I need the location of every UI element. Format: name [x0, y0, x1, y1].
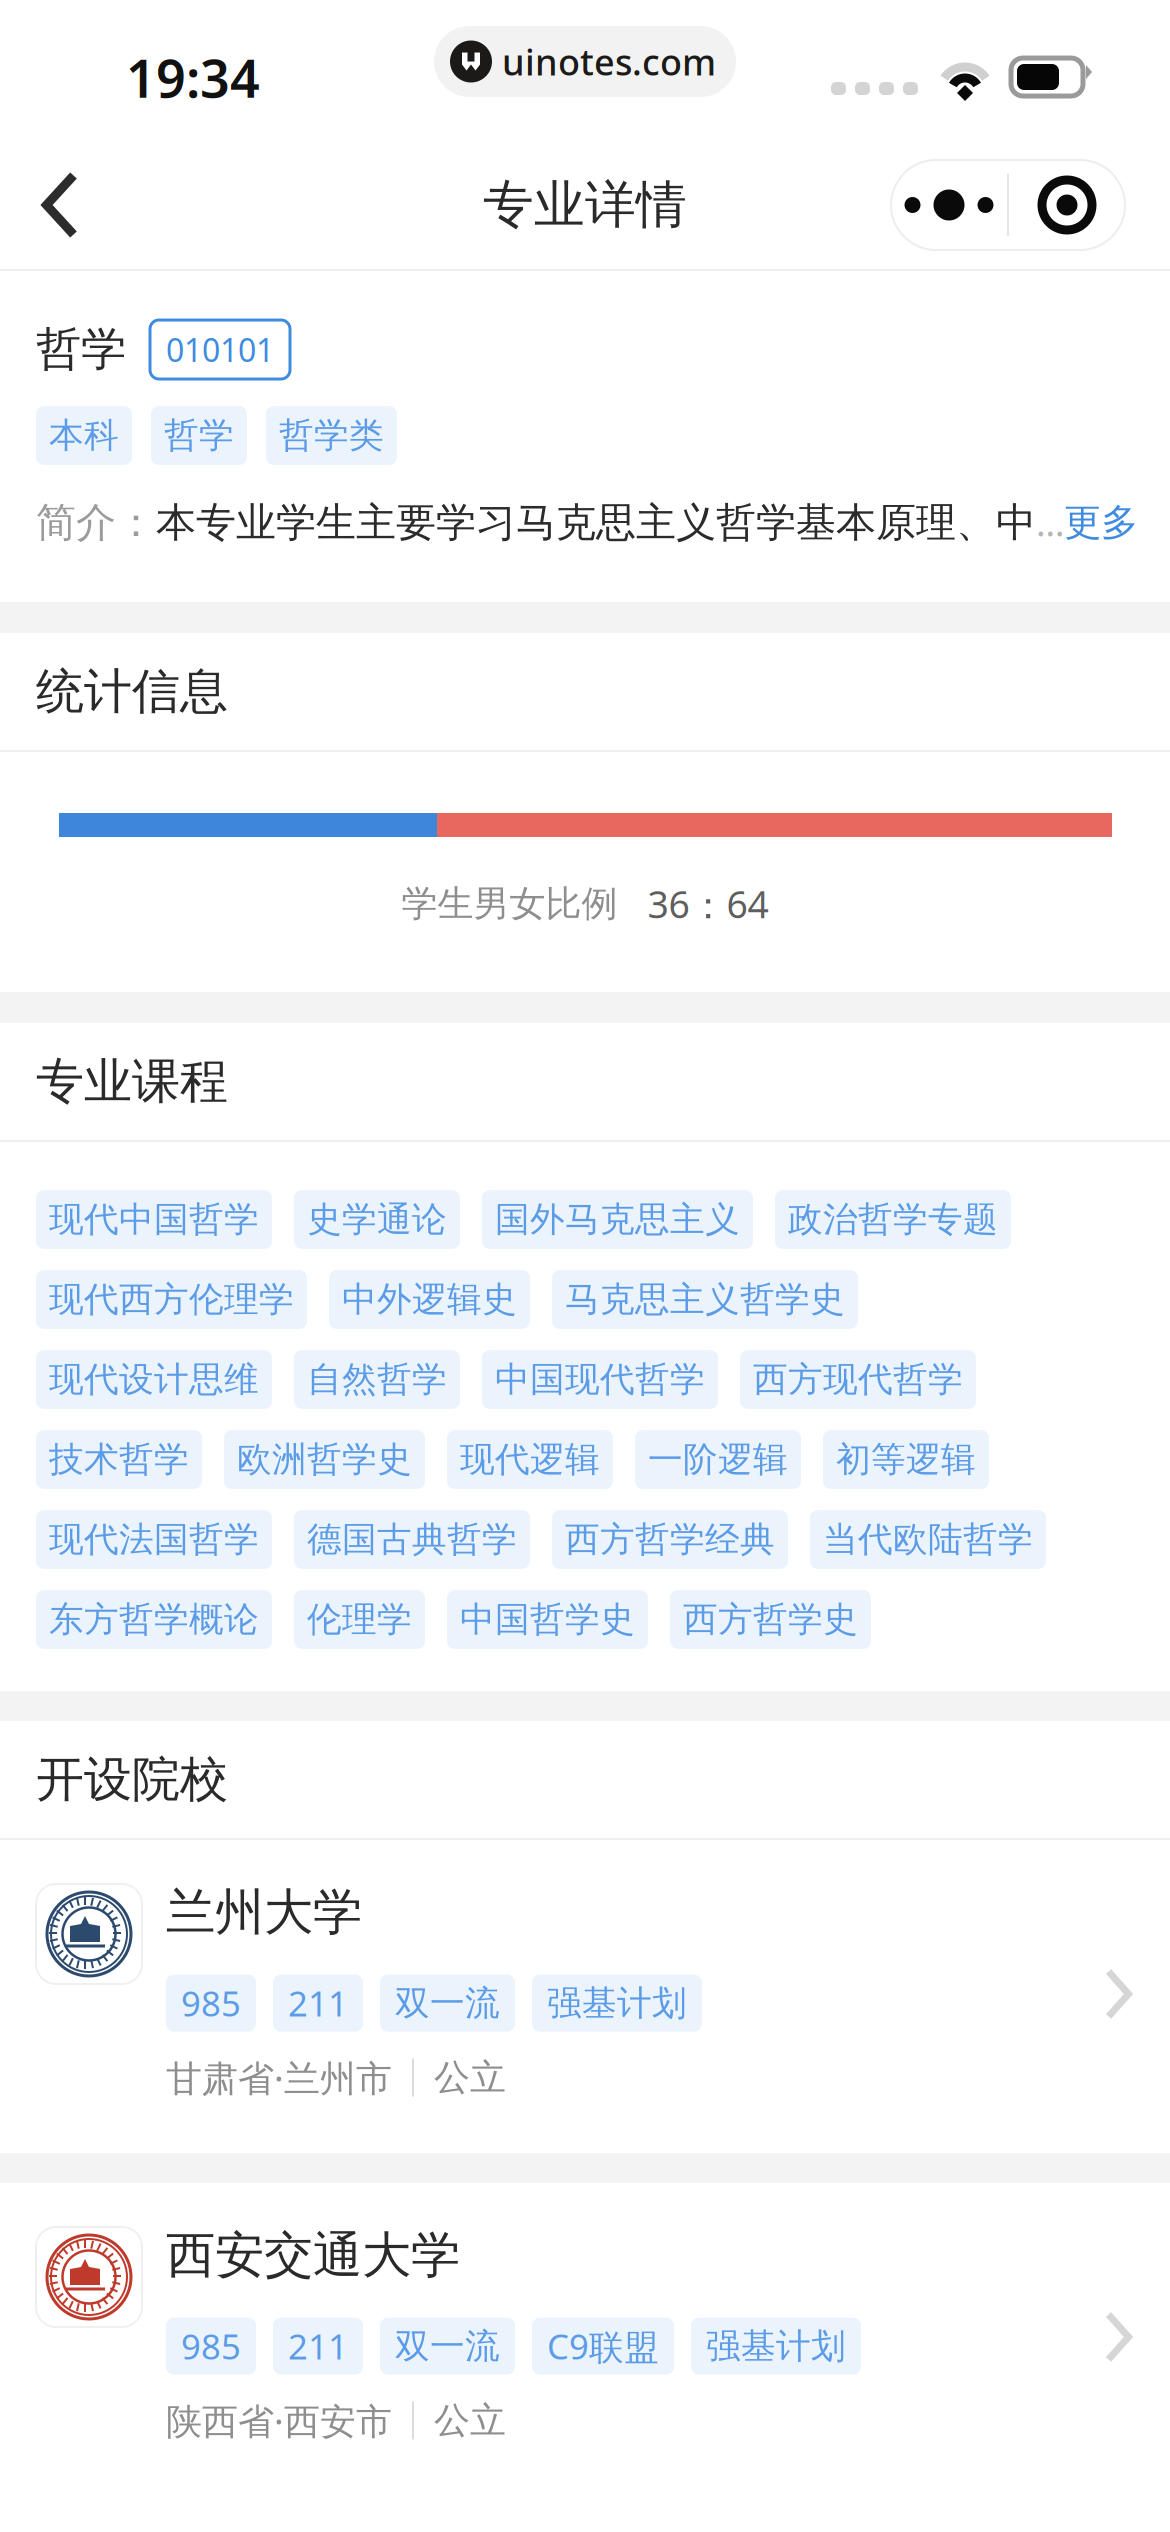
- staticText: 专业课程: [36, 1052, 228, 1111]
- staticText: 双一流: [395, 1982, 500, 2024]
- staticText: 强基计划: [706, 2325, 846, 2367]
- staticText: 当代欧陆哲学: [823, 1518, 1033, 1561]
- staticText: 国外马克思主义: [495, 1198, 740, 1241]
- staticText: 中国现代哲学: [495, 1358, 705, 1401]
- staticText: 西方现代哲学: [753, 1358, 963, 1401]
- button[interactable]: More options: [891, 160, 1007, 250]
- staticText: 史学通论: [307, 1198, 447, 1241]
- staticText: 哲学: [164, 414, 234, 457]
- staticText: 兰州大学: [166, 1882, 362, 1943]
- staticText: 伦理学: [307, 1598, 412, 1641]
- staticText: 211: [288, 1980, 348, 2026]
- staticText: 现代中国哲学: [49, 1198, 259, 1241]
- staticText: …: [1036, 499, 1064, 546]
- staticText: 初等逻辑: [836, 1438, 976, 1481]
- staticText: 德国古典哲学: [307, 1518, 517, 1561]
- staticText: 专业详情: [483, 174, 687, 236]
- staticText: 开设院校: [36, 1750, 228, 1809]
- staticText: 哲学: [36, 322, 126, 377]
- staticText: 自然哲学: [307, 1358, 447, 1401]
- staticText: C9联盟: [547, 2323, 659, 2369]
- staticText: 36：64: [647, 879, 768, 929]
- staticText: 西安交通大学: [166, 2225, 460, 2286]
- staticText: 强基计划: [547, 1982, 687, 2024]
- staticText: 中外逻辑史: [342, 1278, 517, 1321]
- staticText: 一阶逻辑: [648, 1438, 788, 1481]
- staticText: 本专业学生主要学习马克思主义哲学基本原理、中: [156, 498, 1036, 547]
- staticText: 甘肃省·兰州市: [166, 2054, 392, 2101]
- button[interactable]: 更多: [1064, 500, 1138, 545]
- staticText: 本科: [49, 414, 119, 457]
- staticText: 公立: [434, 2055, 506, 2100]
- staticText: 中国哲学史: [460, 1598, 635, 1641]
- staticText: 欧洲哲学史: [237, 1438, 412, 1481]
- staticText: 公立: [434, 2398, 506, 2443]
- staticText: 双一流: [395, 2325, 500, 2367]
- staticText: 211: [288, 2323, 348, 2369]
- staticText: 哲学类: [279, 414, 384, 457]
- staticText: 统计信息: [36, 662, 228, 721]
- staticText: 19:34: [126, 43, 260, 112]
- staticText: 现代设计思维: [49, 1358, 259, 1401]
- staticText: 西方哲学史: [683, 1598, 858, 1641]
- staticText: 现代逻辑: [460, 1438, 600, 1481]
- button[interactable]: Back: [0, 143, 118, 267]
- staticText: 政治哲学专题: [788, 1198, 998, 1241]
- staticText: 010101: [166, 328, 274, 371]
- staticText: uinotes.com: [502, 38, 716, 85]
- staticText: 马克思主义哲学史: [565, 1278, 845, 1321]
- staticText: 985: [181, 1980, 241, 2026]
- staticText: 技术哲学: [49, 1438, 189, 1481]
- staticText: 西方哲学经典: [565, 1518, 775, 1561]
- staticText: 现代法国哲学: [49, 1518, 259, 1561]
- button[interactable]: Close mini program: [1009, 160, 1125, 250]
- staticText: 更多: [1064, 500, 1138, 545]
- staticText: 东方哲学概论: [49, 1598, 259, 1641]
- staticText: 现代西方伦理学: [49, 1278, 294, 1321]
- staticText: 学生男女比例: [401, 882, 617, 926]
- staticText: 陕西省·西安市: [166, 2397, 392, 2444]
- staticText: 985: [181, 2323, 241, 2369]
- button[interactable]: 兰州大学: [0, 1840, 1170, 2153]
- button[interactable]: 西安交通大学: [0, 2183, 1170, 2496]
- staticText: 简介：: [36, 498, 156, 547]
